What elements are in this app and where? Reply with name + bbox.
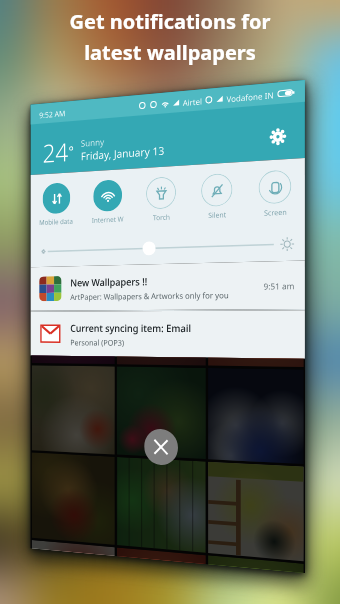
button[interactable]: Settings: [266, 123, 290, 150]
button[interactable]: Torch: [134, 175, 188, 224]
staticText: Screen: [264, 207, 287, 219]
button[interactable]: [31, 355, 305, 573]
button[interactable]: New Wallpapers !!: [39, 261, 294, 311]
staticText: 9:52 AM: [39, 107, 66, 120]
staticText: Personal (POP3): [70, 337, 125, 348]
staticText: ArtPaper: Wallpapers & Artworks only for…: [70, 289, 229, 302]
staticText: Silent: [208, 210, 226, 221]
staticText: Get notifications for: [69, 8, 271, 35]
staticText: °: [68, 141, 74, 160]
button[interactable]: Screen: [245, 169, 305, 220]
staticText: New Wallpapers !!: [70, 274, 148, 289]
staticText: Mobile data: [39, 217, 73, 228]
staticText: Internet W: [91, 215, 124, 226]
staticText: Torch: [152, 213, 170, 223]
staticText: Sunny: [81, 135, 105, 149]
staticText: Airtel: [183, 95, 202, 108]
button[interactable]: Close: [144, 428, 178, 466]
button[interactable]: Silent: [188, 172, 245, 222]
staticText: 9:51 am: [264, 280, 294, 292]
button[interactable]: Current syncing item: Email: [39, 310, 294, 359]
staticText: Current syncing item: Email: [70, 321, 191, 335]
staticText: latest wallpapers: [84, 39, 256, 66]
button[interactable]: Mobile data: [31, 182, 82, 228]
button[interactable]: Internet W: [82, 178, 134, 226]
staticText: Friday, January 13: [81, 143, 165, 163]
staticText: Vodafone IN: [226, 89, 274, 104]
staticText: 24: [43, 134, 68, 169]
